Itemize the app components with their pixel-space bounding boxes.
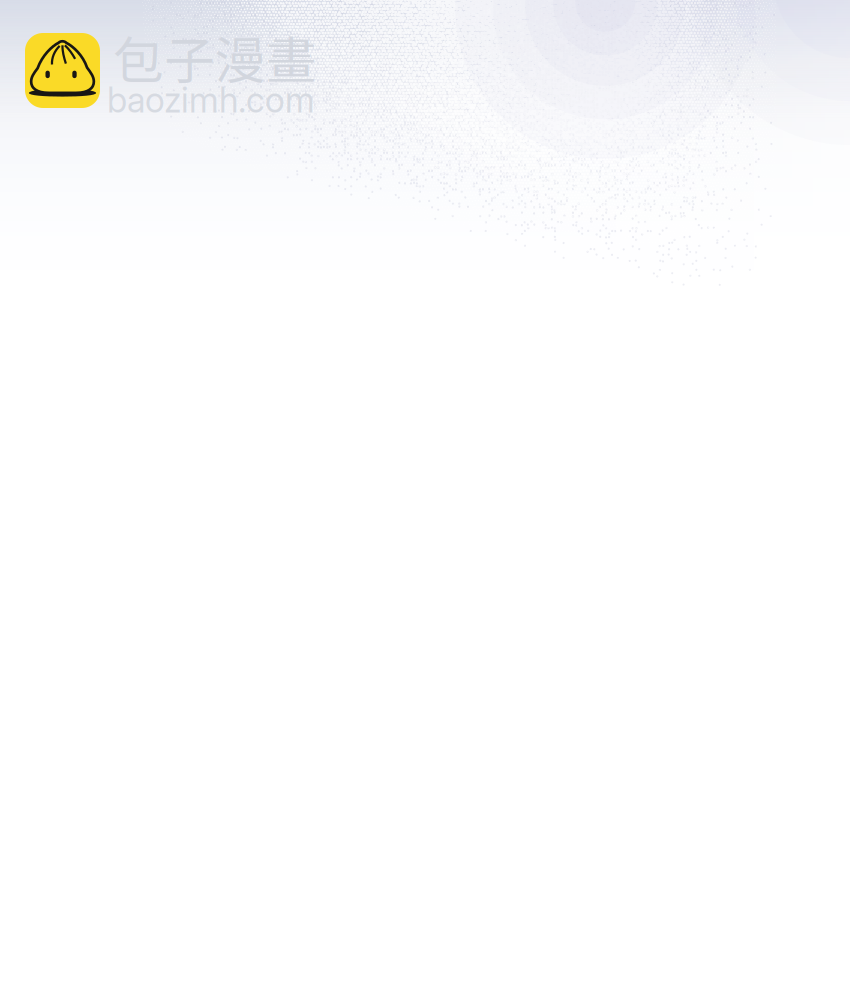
staticText: baozimh.com — [107, 79, 315, 121]
staticText: 包子漫畫 — [113, 20, 317, 94]
